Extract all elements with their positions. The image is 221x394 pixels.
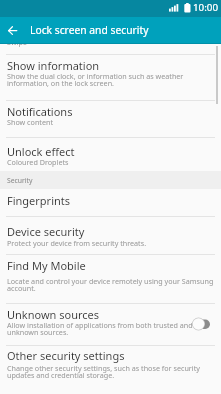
button[interactable] xyxy=(0,189,221,216)
button[interactable] xyxy=(0,216,221,254)
button[interactable] xyxy=(0,54,221,100)
staticText: Fingerprints xyxy=(7,193,71,208)
button[interactable] xyxy=(0,137,221,171)
staticText: Locate and control your device remotely … xyxy=(7,276,214,293)
staticText: Swipe xyxy=(7,44,27,47)
staticText: Device security xyxy=(7,224,85,239)
staticText: Unknown sources xyxy=(7,307,100,322)
staticText: Lock screen and security xyxy=(30,23,149,37)
staticText: Other security settings xyxy=(7,348,125,363)
staticText: Security xyxy=(7,176,33,185)
staticText: Show the dual clock, or information such… xyxy=(7,71,184,88)
staticText: Find My Mobile xyxy=(7,258,86,273)
staticText: Allow installation of applications from … xyxy=(7,320,193,337)
button[interactable] xyxy=(0,303,221,345)
staticText: Show information xyxy=(7,58,100,73)
staticText: Coloured Droplets xyxy=(7,157,69,167)
staticText: 10:00 xyxy=(193,1,219,14)
staticText: Notifications xyxy=(7,104,73,119)
staticText: Unlock effect xyxy=(7,144,75,159)
button[interactable] xyxy=(0,254,221,302)
staticText: Change other security settings, such as … xyxy=(7,363,200,380)
button[interactable] xyxy=(0,100,221,137)
button[interactable] xyxy=(0,345,221,389)
staticText: Protect your device from security threat… xyxy=(7,238,147,248)
button[interactable] xyxy=(3,20,24,41)
staticText: Show content xyxy=(7,117,54,127)
